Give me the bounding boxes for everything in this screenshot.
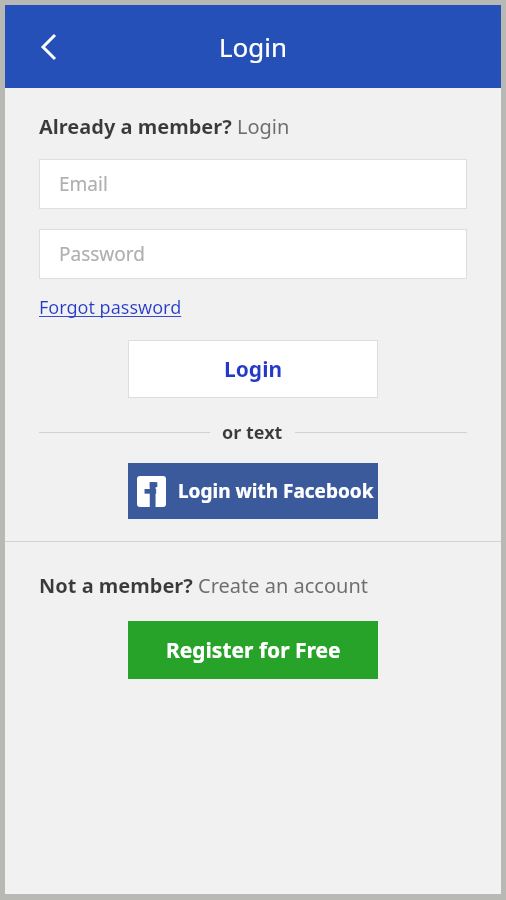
staticText: Already a member? Login — [39, 113, 290, 140]
button[interactable]: Login — [128, 340, 378, 398]
button[interactable]: Email — [39, 159, 467, 209]
button[interactable]: Password — [39, 229, 467, 279]
staticText: Forgot password — [39, 295, 182, 320]
staticText: Email — [59, 171, 108, 197]
button[interactable]: Forgot password — [39, 293, 182, 322]
staticText: Not a member? Create an account — [39, 572, 368, 599]
staticText: Login — [219, 29, 288, 64]
staticText: Password — [59, 241, 145, 267]
staticText: or text — [222, 420, 283, 445]
staticText: Register for Free — [166, 636, 341, 665]
button[interactable]: Login with Facebook — [128, 463, 378, 519]
button[interactable]: Back — [23, 21, 75, 73]
button[interactable]: Register for Free — [128, 621, 378, 679]
staticText: Login — [224, 355, 283, 384]
staticText: Login with Facebook — [178, 478, 374, 504]
